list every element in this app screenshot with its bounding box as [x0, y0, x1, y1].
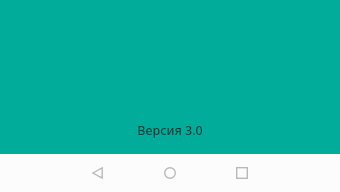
- staticText: Версия 3.0: [137, 122, 203, 139]
- button[interactable]: Recent apps: [218, 154, 266, 192]
- button[interactable]: Back: [73, 154, 121, 192]
- button[interactable]: Home: [146, 154, 194, 192]
